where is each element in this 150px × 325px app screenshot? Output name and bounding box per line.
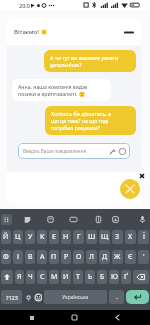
staticText: Х bbox=[128, 232, 133, 242]
button[interactable]: І bbox=[13, 250, 23, 264]
button[interactable]: А чи тут ви зможете узнати детальніше? bbox=[50, 54, 130, 68]
button[interactable]: Backspace bbox=[133, 270, 149, 284]
staticText: К bbox=[40, 232, 45, 242]
button[interactable]: Emoji bbox=[34, 290, 42, 304]
button[interactable]: clipboard bbox=[45, 214, 56, 225]
staticText: І bbox=[17, 252, 19, 262]
staticText: Д bbox=[102, 252, 108, 262]
button[interactable]: Т bbox=[73, 270, 83, 284]
button[interactable]: sticker bbox=[22, 214, 33, 225]
button[interactable]: М bbox=[49, 270, 59, 284]
button[interactable]: Б bbox=[97, 270, 107, 284]
staticText: Н bbox=[63, 232, 69, 242]
staticText: Анна, наша компанія видає позики в крипт… bbox=[18, 83, 88, 97]
staticText: Ж bbox=[114, 252, 121, 262]
button[interactable]: Українська bbox=[44, 290, 107, 304]
staticText: Ї bbox=[143, 232, 145, 242]
button[interactable]: Х bbox=[125, 230, 136, 244]
button[interactable]: Minimize bbox=[122, 25, 136, 39]
button[interactable]: Attach file bbox=[107, 147, 116, 156]
button[interactable]: Ж bbox=[112, 250, 123, 264]
button[interactable]: . bbox=[109, 290, 124, 304]
button[interactable]: А bbox=[37, 250, 47, 264]
button[interactable]: Send bbox=[126, 290, 149, 304]
button[interactable]: Back bbox=[107, 310, 127, 325]
button[interactable]: Г bbox=[73, 230, 84, 244]
button[interactable]: З bbox=[112, 230, 123, 244]
staticText: Українська bbox=[62, 294, 89, 301]
staticText: Б bbox=[100, 272, 105, 282]
button[interactable]: Ґ bbox=[121, 270, 131, 284]
button[interactable]: Home bbox=[64, 310, 84, 325]
staticText: С bbox=[40, 272, 45, 282]
staticText: Щ bbox=[101, 232, 109, 242]
button[interactable]: Й bbox=[1, 230, 11, 244]
button[interactable]: И bbox=[61, 270, 71, 284]
button[interactable]: Щ bbox=[99, 230, 110, 244]
button[interactable]: mic bbox=[137, 214, 148, 225]
button[interactable]: Ф bbox=[1, 250, 11, 264]
staticText: Ш bbox=[88, 232, 96, 242]
button[interactable]: translate bbox=[110, 214, 121, 225]
staticText: Г bbox=[77, 232, 81, 242]
button[interactable]: У bbox=[25, 230, 35, 244]
button[interactable]: Н bbox=[61, 230, 71, 244]
staticText: Ю bbox=[111, 272, 118, 282]
staticText: ?123 bbox=[6, 294, 18, 301]
button[interactable]: Recents bbox=[22, 310, 42, 325]
staticText: Є bbox=[128, 252, 133, 262]
button[interactable]: Ю bbox=[109, 270, 119, 284]
staticText: О bbox=[76, 252, 82, 262]
button[interactable]: К bbox=[37, 230, 47, 244]
staticText: Л bbox=[89, 252, 94, 262]
button[interactable]: О bbox=[73, 250, 84, 264]
staticText: У bbox=[28, 232, 33, 242]
button[interactable]: ?123 bbox=[1, 290, 22, 304]
staticText: А bbox=[40, 252, 45, 262]
staticText: П bbox=[51, 252, 57, 262]
button[interactable]: Close chat bbox=[120, 179, 140, 199]
button[interactable]: ' bbox=[138, 250, 149, 264]
staticText: Вітаємо! bbox=[14, 28, 39, 36]
staticText: В bbox=[28, 252, 33, 262]
button[interactable]: Анна, наша компанія видає позики в крипт… bbox=[18, 83, 105, 97]
button[interactable]: Введіть Ваше повідомлення bbox=[23, 143, 127, 159]
button[interactable]: Ї bbox=[138, 230, 149, 244]
button[interactable]: П bbox=[49, 250, 59, 264]
button[interactable]: Emoji bbox=[118, 147, 127, 156]
button[interactable]: Р bbox=[61, 250, 71, 264]
staticText: Й bbox=[3, 232, 9, 242]
staticText: Ц bbox=[15, 232, 21, 242]
button[interactable]: Dismiss bbox=[138, 172, 145, 179]
staticText: Т bbox=[76, 272, 80, 282]
staticText: Ґ bbox=[124, 272, 128, 282]
staticText: Введіть Ваше повідомлення bbox=[23, 148, 87, 154]
staticText: 20:01 bbox=[19, 2, 34, 9]
button[interactable]: Є bbox=[125, 250, 136, 264]
staticText: А чи тут ви зможете узнати детальніше? bbox=[50, 54, 119, 68]
button[interactable]: В bbox=[25, 250, 35, 264]
button[interactable]: Л bbox=[86, 250, 97, 264]
button[interactable]: Е bbox=[49, 230, 59, 244]
staticText: Р bbox=[64, 252, 69, 262]
button[interactable]: Хотілось би дізнатись, а що це таке? на … bbox=[51, 110, 130, 131]
button[interactable]: gif bbox=[68, 214, 79, 225]
staticText: З bbox=[115, 232, 120, 242]
staticText: Я bbox=[17, 272, 22, 282]
staticText: Ч bbox=[28, 272, 33, 282]
staticText: . bbox=[116, 292, 118, 302]
button[interactable]: Я bbox=[15, 270, 24, 284]
staticText: М bbox=[51, 272, 58, 282]
staticText: И bbox=[63, 272, 69, 282]
button[interactable]: grid bbox=[93, 214, 104, 225]
button[interactable]: С bbox=[37, 270, 47, 284]
button[interactable]: Ш bbox=[86, 230, 97, 244]
staticText: Ф bbox=[3, 252, 9, 262]
button[interactable]: Ч bbox=[26, 270, 35, 284]
button[interactable]: Ц bbox=[13, 230, 23, 244]
button[interactable]: Ь bbox=[85, 270, 95, 284]
button[interactable]: Д bbox=[99, 250, 110, 264]
button[interactable]: Settings bbox=[24, 290, 32, 304]
button[interactable]: Shift bbox=[1, 270, 13, 284]
button[interactable]: Apps bbox=[1, 214, 12, 225]
